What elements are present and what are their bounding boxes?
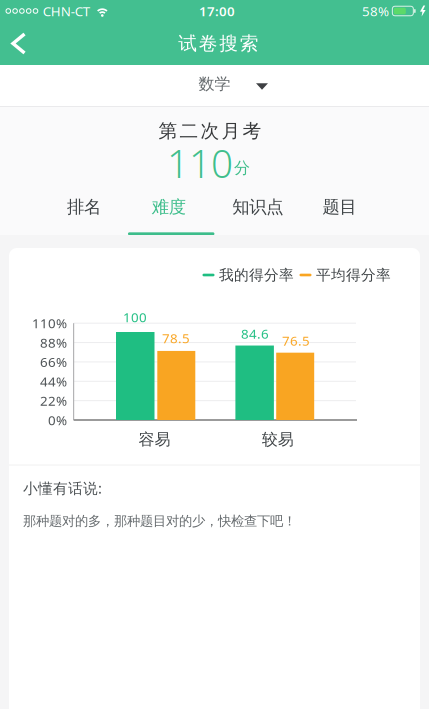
staticText: 知识点 (232, 196, 283, 218)
staticText: 难度 (152, 196, 186, 218)
staticText: 第二次月考 (158, 119, 261, 142)
staticText: 我的得分率 (219, 266, 294, 284)
staticText: 44% (40, 372, 67, 390)
button[interactable]: 知识点 (215, 187, 301, 227)
staticText: 17:00 (199, 2, 235, 20)
staticText: 0% (48, 411, 67, 429)
staticText: 110 (167, 137, 233, 189)
staticText: 平均得分率 (316, 266, 391, 284)
button[interactable]: Back (0, 22, 27, 64)
staticText: 小懂有话说: (23, 478, 102, 498)
staticText: 84.6 (241, 325, 269, 342)
staticText: 76.5 (282, 332, 310, 349)
staticText: 22% (40, 392, 67, 409)
staticText: 分 (234, 158, 250, 178)
staticText: 88% (40, 334, 67, 351)
staticText: 110% (32, 314, 67, 332)
staticText: 100 (123, 308, 147, 326)
staticText: 数学 (198, 74, 230, 94)
staticText: 题目 (322, 196, 356, 218)
staticText: 排名 (67, 196, 101, 218)
staticText: 66% (40, 353, 67, 371)
button[interactable]: 选择科目 (0, 65, 429, 107)
button[interactable]: 题目 (296, 187, 382, 227)
staticText: 较易 (262, 430, 294, 449)
staticText: CHN-CT (43, 2, 90, 20)
button[interactable]: 排名 (41, 187, 127, 227)
staticText: 那种题对的多，那种题目对的少，快检查下吧！ (23, 513, 296, 529)
staticText: 试卷搜索 (178, 32, 259, 55)
staticText: 78.5 (162, 329, 190, 347)
button[interactable]: 难度 (126, 187, 212, 227)
staticText: 58% (362, 2, 389, 20)
staticText: 容易 (138, 430, 170, 449)
